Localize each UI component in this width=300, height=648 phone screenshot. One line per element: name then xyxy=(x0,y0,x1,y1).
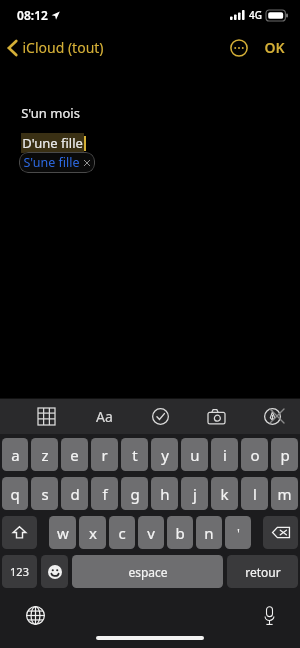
button[interactable]: iCloud (tout) xyxy=(0,34,112,61)
button[interactable]: j xyxy=(181,477,208,510)
staticText: espace xyxy=(128,564,168,580)
button[interactable]: More options xyxy=(226,35,252,61)
button[interactable]: i xyxy=(211,438,238,471)
button[interactable]: Aa xyxy=(91,403,117,429)
staticText: D'une fille xyxy=(22,134,83,152)
staticText: retour xyxy=(245,564,281,580)
other: Dismiss suggestion xyxy=(83,159,91,167)
staticText: l xyxy=(253,484,257,504)
button[interactable]: v xyxy=(138,516,164,549)
staticText: g xyxy=(130,484,140,504)
button[interactable]: z xyxy=(31,438,58,471)
button[interactable]: k xyxy=(211,477,238,510)
staticText: 08:12 xyxy=(17,7,48,23)
staticText: S'une fille xyxy=(23,154,80,171)
staticText: S'un mois xyxy=(21,104,80,122)
staticText: k xyxy=(220,484,229,504)
button[interactable]: Camera xyxy=(203,403,229,429)
staticText: OK xyxy=(264,38,285,57)
button[interactable]: ' xyxy=(225,516,251,549)
staticText: Aa xyxy=(96,407,113,426)
staticText: f xyxy=(102,484,108,504)
staticText: a xyxy=(11,445,20,465)
button[interactable]: Markup xyxy=(259,403,285,429)
button[interactable]: OK xyxy=(261,34,288,61)
staticText: x xyxy=(89,523,97,543)
staticText: b xyxy=(175,523,185,543)
staticText: t xyxy=(132,445,138,465)
staticText: ' xyxy=(237,524,240,542)
button[interactable]: p xyxy=(271,438,298,471)
button[interactable]: t xyxy=(121,438,148,471)
button[interactable]: n xyxy=(196,516,222,549)
staticText: c xyxy=(118,523,126,543)
button[interactable]: x xyxy=(79,516,106,549)
button[interactable]: r xyxy=(91,438,118,471)
button[interactable]: Backspace xyxy=(263,516,298,549)
staticText: e xyxy=(70,445,79,465)
button[interactable]: Close keyboard xyxy=(266,405,288,427)
button[interactable]: o xyxy=(241,438,268,471)
button[interactable]: y xyxy=(151,438,178,471)
staticText: y xyxy=(161,445,169,465)
staticText: m xyxy=(277,484,292,504)
staticText: u xyxy=(190,445,200,465)
staticText: n xyxy=(204,523,214,543)
staticText: d xyxy=(70,484,80,504)
staticText: h xyxy=(160,484,170,504)
staticText: w xyxy=(57,523,69,543)
button[interactable]: espace xyxy=(72,555,223,588)
button[interactable]: S'une fille xyxy=(19,152,95,173)
button[interactable]: q xyxy=(2,477,28,510)
staticText: q xyxy=(10,484,20,504)
button[interactable]: u xyxy=(181,438,208,471)
staticText: 4G xyxy=(249,8,262,22)
staticText: s xyxy=(41,484,49,504)
button[interactable]: Dictate xyxy=(256,602,282,628)
staticText: v xyxy=(147,523,155,543)
button[interactable]: Checklist xyxy=(147,403,173,429)
button[interactable]: l xyxy=(241,477,268,510)
staticText: iCloud (tout) xyxy=(22,38,104,57)
button[interactable]: g xyxy=(121,477,148,510)
button[interactable]: Insert table xyxy=(33,403,59,429)
staticText: z xyxy=(41,445,49,465)
button[interactable]: e xyxy=(61,438,88,471)
staticText: j xyxy=(193,484,197,504)
button[interactable]: a xyxy=(2,438,28,471)
button[interactable]: 123 xyxy=(2,555,37,588)
button[interactable]: Shift xyxy=(2,516,37,549)
button[interactable]: d xyxy=(61,477,88,510)
button[interactable]: s xyxy=(31,477,58,510)
button[interactable]: f xyxy=(91,477,118,510)
staticText: p xyxy=(280,445,290,465)
button[interactable]: Emoji xyxy=(41,555,68,588)
button[interactable]: Switch keyboard language xyxy=(22,602,48,628)
button[interactable]: w xyxy=(49,516,76,549)
button[interactable]: h xyxy=(151,477,178,510)
button[interactable]: retour xyxy=(227,555,298,588)
button[interactable]: c xyxy=(109,516,135,549)
button[interactable]: b xyxy=(167,516,193,549)
staticText: i xyxy=(223,445,227,465)
staticText: 123 xyxy=(10,564,29,579)
button[interactable]: m xyxy=(271,477,298,510)
staticText: o xyxy=(250,445,260,465)
staticText: r xyxy=(101,445,108,465)
